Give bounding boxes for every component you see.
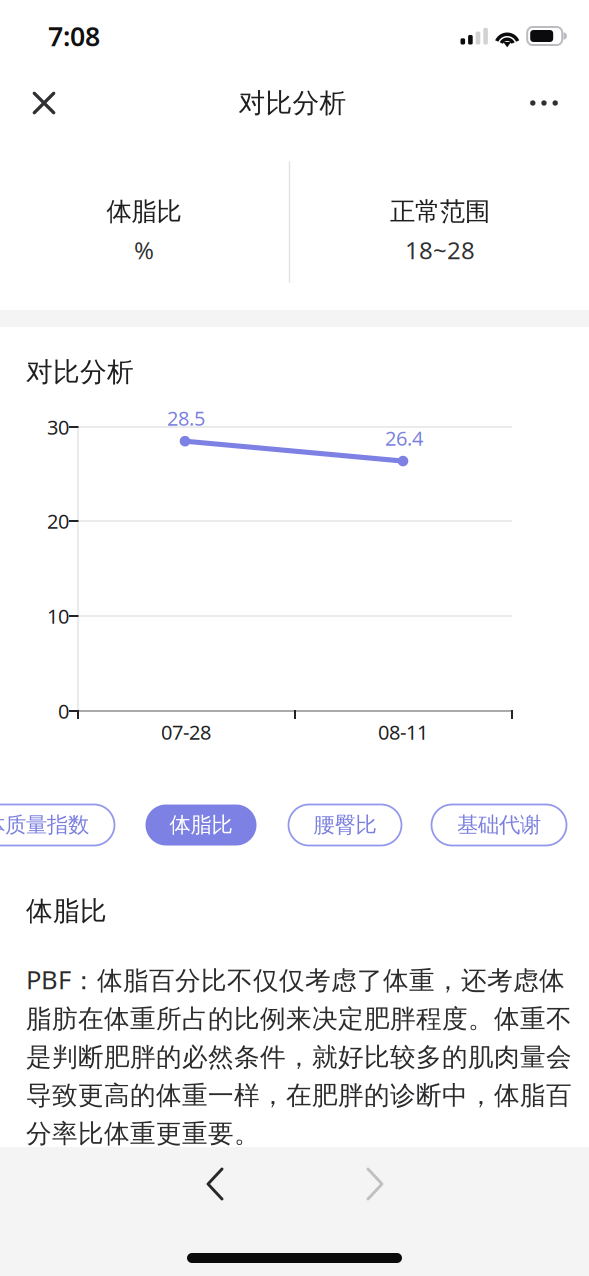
staticText: %: [134, 234, 154, 266]
button[interactable]: 腰臀比: [288, 804, 401, 845]
button[interactable]: Previous: [171, 1148, 259, 1220]
button[interactable]: More options: [511, 68, 577, 138]
staticText: 基础代谢: [457, 812, 541, 838]
staticText: 26.4: [385, 425, 423, 451]
staticText: 腰臀比: [313, 812, 376, 838]
staticText: 08-11: [378, 719, 428, 745]
staticText: 体脂比: [26, 895, 107, 927]
staticText: 7:08: [48, 18, 100, 54]
staticText: 07-28: [161, 719, 211, 745]
staticText: 20: [47, 508, 69, 534]
staticText: 对比分析: [26, 356, 134, 388]
staticText: 0: [58, 698, 69, 724]
staticText: 18~28: [405, 234, 475, 266]
staticText: 体脂比: [106, 196, 181, 227]
button[interactable]: 身体质量指数: [0, 804, 114, 845]
button[interactable]: Close: [10, 69, 77, 136]
staticText: 正常范围: [390, 196, 490, 227]
button[interactable]: 基础代谢: [431, 804, 566, 845]
staticText: PBF：体脂百分比不仅仅考虑了体重，还考虑体脂肪在体重所占的比例来决定肥胖程度。…: [26, 962, 572, 1150]
button[interactable]: Next: [331, 1148, 419, 1220]
button[interactable]: 体脂比: [145, 804, 256, 845]
staticText: 28.5: [167, 405, 205, 431]
staticText: 身体质量指数: [0, 812, 89, 838]
staticText: 对比分析: [238, 87, 346, 119]
staticText: 体脂比: [169, 812, 232, 838]
staticText: 30: [47, 414, 69, 440]
staticText: 10: [47, 603, 69, 629]
